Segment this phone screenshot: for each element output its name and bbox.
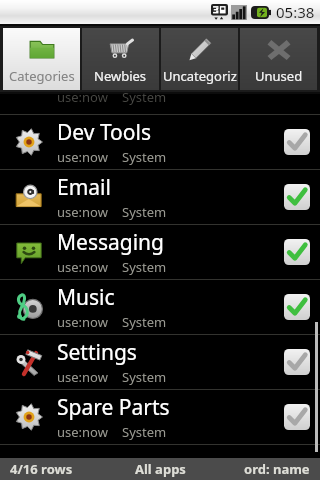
button[interactable]: Messaging bbox=[0, 225, 320, 279]
staticText: use:now bbox=[57, 313, 108, 331]
button[interactable]: Dev Tools bbox=[0, 115, 320, 169]
staticText: 4/16 rows bbox=[10, 460, 73, 478]
button[interactable]: Uncategoriz bbox=[161, 28, 238, 90]
staticText: Messaging bbox=[57, 228, 165, 257]
button[interactable]: Categories bbox=[3, 28, 80, 90]
staticText: System bbox=[122, 423, 167, 441]
staticText: System bbox=[122, 368, 167, 386]
staticText: Uncategoriz bbox=[163, 67, 237, 85]
staticText: Categories bbox=[9, 67, 75, 85]
staticText: use:now bbox=[57, 368, 108, 386]
button[interactable]: Email bbox=[0, 170, 320, 224]
button[interactable]: Newbies bbox=[82, 28, 159, 90]
staticText: Music bbox=[57, 283, 115, 312]
staticText: Dev Tools bbox=[57, 118, 151, 147]
staticText: System bbox=[122, 88, 167, 106]
button[interactable]: Unchecked bbox=[274, 390, 320, 444]
button[interactable]: Unchecked bbox=[274, 115, 320, 169]
staticText: Email bbox=[57, 173, 111, 202]
staticText: System bbox=[122, 203, 167, 221]
button[interactable]: Checked bbox=[274, 170, 320, 224]
staticText: ord: name bbox=[244, 460, 310, 478]
button[interactable]: Checked bbox=[274, 225, 320, 279]
staticText: use:now bbox=[57, 88, 108, 106]
button[interactable]: Checked bbox=[274, 280, 320, 334]
staticText: 05:38 bbox=[276, 2, 315, 22]
staticText: System bbox=[122, 313, 167, 331]
staticText: Settings bbox=[57, 338, 137, 367]
staticText: use:now bbox=[57, 423, 108, 441]
staticText: use:now bbox=[57, 258, 108, 276]
staticText: Unused bbox=[255, 67, 303, 85]
button[interactable]: Unused bbox=[240, 28, 317, 90]
staticText: Spare Parts bbox=[57, 393, 170, 422]
staticText: Newbies bbox=[94, 67, 147, 85]
button[interactable]: Spare Parts bbox=[0, 390, 320, 444]
button[interactable]: Settings bbox=[0, 335, 320, 389]
staticText: use:now bbox=[57, 148, 108, 166]
staticText: System bbox=[122, 258, 167, 276]
staticText: All apps bbox=[135, 460, 186, 478]
button[interactable]: Unchecked bbox=[274, 335, 320, 389]
button[interactable]: use:now bbox=[0, 94, 320, 114]
staticText: use:now bbox=[57, 203, 108, 221]
button[interactable]: Music bbox=[0, 280, 320, 334]
staticText: System bbox=[122, 148, 167, 166]
